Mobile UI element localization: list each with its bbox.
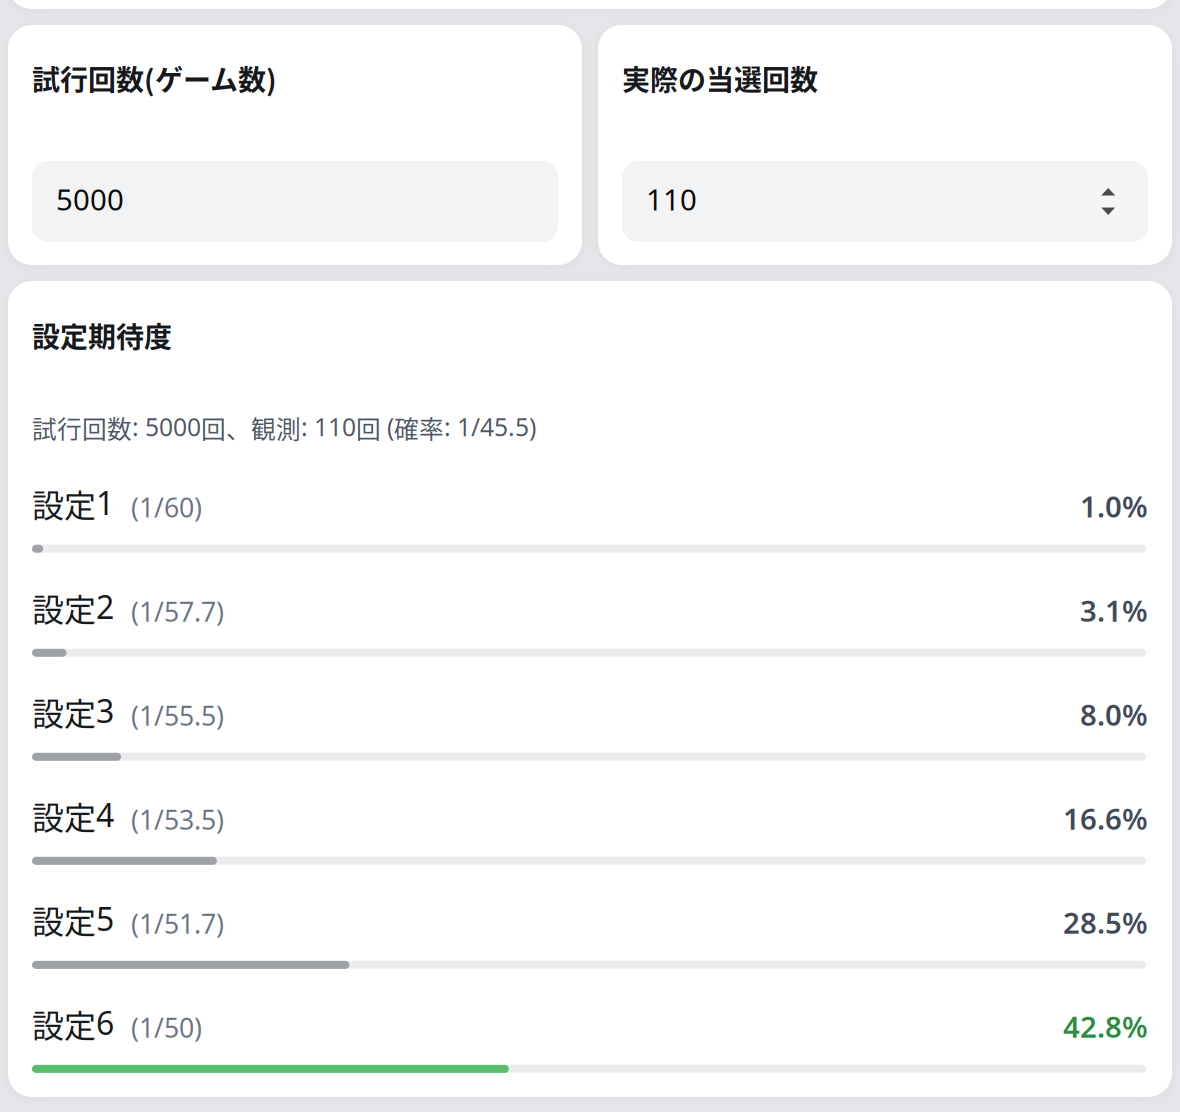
staticText: 1.0%: [1080, 486, 1148, 526]
staticText: (1/50): [131, 1009, 202, 1045]
staticText: (1/53.5): [131, 801, 224, 837]
staticText: 設定2: [32, 585, 114, 630]
staticText: (1/51.7): [131, 905, 224, 941]
button[interactable]: 110: [622, 161, 1148, 242]
staticText: 設定6: [32, 1001, 114, 1046]
staticText: 42.8%: [1063, 1006, 1148, 1046]
staticText: (1/55.5): [131, 697, 224, 733]
staticText: 設定5: [32, 897, 114, 942]
staticText: 5000: [56, 179, 124, 219]
staticText: 28.5%: [1063, 902, 1148, 942]
staticText: 実際の当選回数: [622, 58, 818, 98]
staticText: 設定1: [32, 481, 114, 526]
staticText: 試行回数(ゲーム数): [32, 58, 277, 98]
staticText: 設定期待度: [32, 315, 172, 356]
staticText: 110: [646, 179, 697, 219]
staticText: 試行回数: 5000回、観測: 110回 (確率: 1/45.5): [32, 410, 536, 445]
staticText: (1/57.7): [131, 593, 224, 629]
staticText: (1/60): [131, 489, 202, 525]
staticText: 設定3: [32, 689, 114, 734]
staticText: 3.1%: [1080, 590, 1148, 630]
button[interactable]: 当選回数を増減: [1094, 181, 1122, 221]
staticText: 設定4: [32, 793, 114, 838]
staticText: 16.6%: [1063, 798, 1148, 838]
button[interactable]: 5000: [32, 161, 558, 242]
staticText: 8.0%: [1080, 694, 1148, 734]
